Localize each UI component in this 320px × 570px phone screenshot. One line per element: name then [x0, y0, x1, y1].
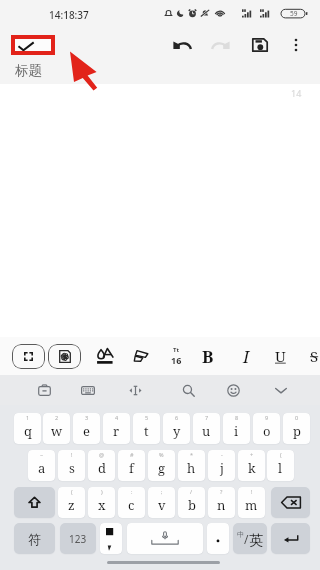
button[interactable]: ?: [208, 487, 235, 518]
staticText: g: [158, 459, 165, 477]
staticText: 14:18:37: [49, 8, 89, 22]
staticText: !: [251, 488, 253, 495]
button[interactable]: Switch language: [233, 523, 267, 554]
staticText: 59: [290, 9, 298, 18]
button[interactable]: Move cursor: [121, 377, 149, 403]
staticText: /: [244, 531, 249, 547]
staticText: /: [190, 488, 193, 495]
staticText: a: [38, 459, 46, 477]
staticText: r: [113, 422, 120, 440]
button[interactable]: ~: [28, 450, 55, 481]
button[interactable]: (: [267, 450, 294, 481]
staticText: 0: [295, 414, 299, 421]
button[interactable]: 9: [253, 413, 280, 444]
button[interactable]: +: [238, 450, 265, 481]
button[interactable]: %: [148, 450, 175, 481]
button[interactable]: Search: [174, 377, 202, 403]
button[interactable]: Underline: [267, 343, 293, 369]
button[interactable]: Redo: [206, 33, 234, 57]
button[interactable]: *: [178, 450, 205, 481]
staticText: f: [129, 459, 134, 477]
staticText: 9: [265, 414, 269, 421]
staticText: x: [98, 496, 106, 514]
staticText: c: [128, 496, 135, 514]
staticText: @: [99, 451, 104, 458]
button[interactable]: Text colour: [92, 343, 118, 369]
button[interactable]: Undo: [168, 33, 196, 57]
staticText: 5: [145, 414, 149, 421]
button[interactable]: More options: [283, 33, 309, 57]
button[interactable]: Period: [207, 523, 229, 554]
button[interactable]: Numbers: [60, 523, 96, 554]
staticText: (: [71, 488, 73, 495]
staticText: 1: [26, 414, 30, 421]
button[interactable]: Italic: [233, 343, 259, 369]
button[interactable]: Space: [127, 523, 203, 554]
button[interactable]: Shift: [14, 487, 55, 518]
staticText: 123: [69, 532, 87, 546]
staticText: 14: [291, 87, 302, 99]
staticText: 中: [237, 530, 244, 539]
staticText: k: [248, 459, 256, 477]
staticText: S: [310, 346, 319, 366]
button[interactable]: Symbols: [14, 523, 55, 554]
button[interactable]: Font size: [164, 343, 188, 369]
staticText: y: [173, 422, 181, 440]
staticText: l: [278, 459, 283, 477]
button[interactable]: 6: [163, 413, 190, 444]
staticText: ;: [161, 488, 163, 495]
button[interactable]: Bold: [195, 343, 221, 369]
staticText: ): [101, 488, 103, 495]
staticText: (: [280, 451, 282, 458]
staticText: n: [217, 496, 226, 514]
button[interactable]: #: [118, 450, 145, 481]
button[interactable]: Save: [246, 33, 274, 57]
button[interactable]: Insert image: [48, 344, 81, 369]
staticText: !: [71, 451, 73, 458]
staticText: z: [68, 496, 75, 514]
staticText: w: [51, 422, 63, 440]
button[interactable]: Enter: [271, 523, 310, 554]
staticText: I: [243, 345, 250, 368]
button[interactable]: :: [118, 487, 145, 518]
button[interactable]: !: [58, 450, 85, 481]
button[interactable]: Collapse keyboard: [267, 377, 295, 403]
staticText: b: [188, 496, 196, 514]
button[interactable]: 3: [73, 413, 100, 444]
button[interactable]: 1: [14, 413, 41, 444]
button[interactable]: Emoji: [219, 377, 247, 403]
staticText: 标题: [15, 62, 42, 79]
button[interactable]: 2: [43, 413, 70, 444]
button[interactable]: ;: [148, 487, 175, 518]
staticText: p: [293, 422, 301, 440]
button[interactable]: Symbol: [100, 523, 122, 554]
staticText: v: [158, 496, 166, 514]
button[interactable]: 7: [193, 413, 220, 444]
staticText: *: [190, 451, 194, 458]
button[interactable]: 0: [283, 413, 310, 444]
button[interactable]: -: [208, 450, 235, 481]
button[interactable]: Done: [11, 35, 55, 55]
button[interactable]: Highlight: [128, 343, 154, 369]
button[interactable]: Clipboard: [30, 377, 58, 403]
button[interactable]: 4: [103, 413, 130, 444]
staticText: t: [144, 422, 149, 440]
staticText: 2: [55, 414, 59, 421]
button[interactable]: 8: [223, 413, 250, 444]
staticText: s: [69, 459, 75, 477]
button[interactable]: !: [238, 487, 265, 518]
staticText: i: [234, 422, 239, 440]
staticText: #: [130, 451, 134, 458]
button[interactable]: 5: [133, 413, 160, 444]
staticText: q: [24, 422, 32, 440]
button[interactable]: @: [88, 450, 115, 481]
button[interactable]: Strikethrough: [301, 343, 320, 369]
button[interactable]: (: [58, 487, 85, 518]
button[interactable]: /: [178, 487, 205, 518]
staticText: %: [159, 451, 164, 458]
button[interactable]: ): [88, 487, 115, 518]
staticText: 8: [235, 414, 239, 421]
button[interactable]: Select: [12, 344, 45, 369]
button[interactable]: Keyboard: [74, 377, 102, 403]
button[interactable]: Backspace: [271, 487, 310, 518]
